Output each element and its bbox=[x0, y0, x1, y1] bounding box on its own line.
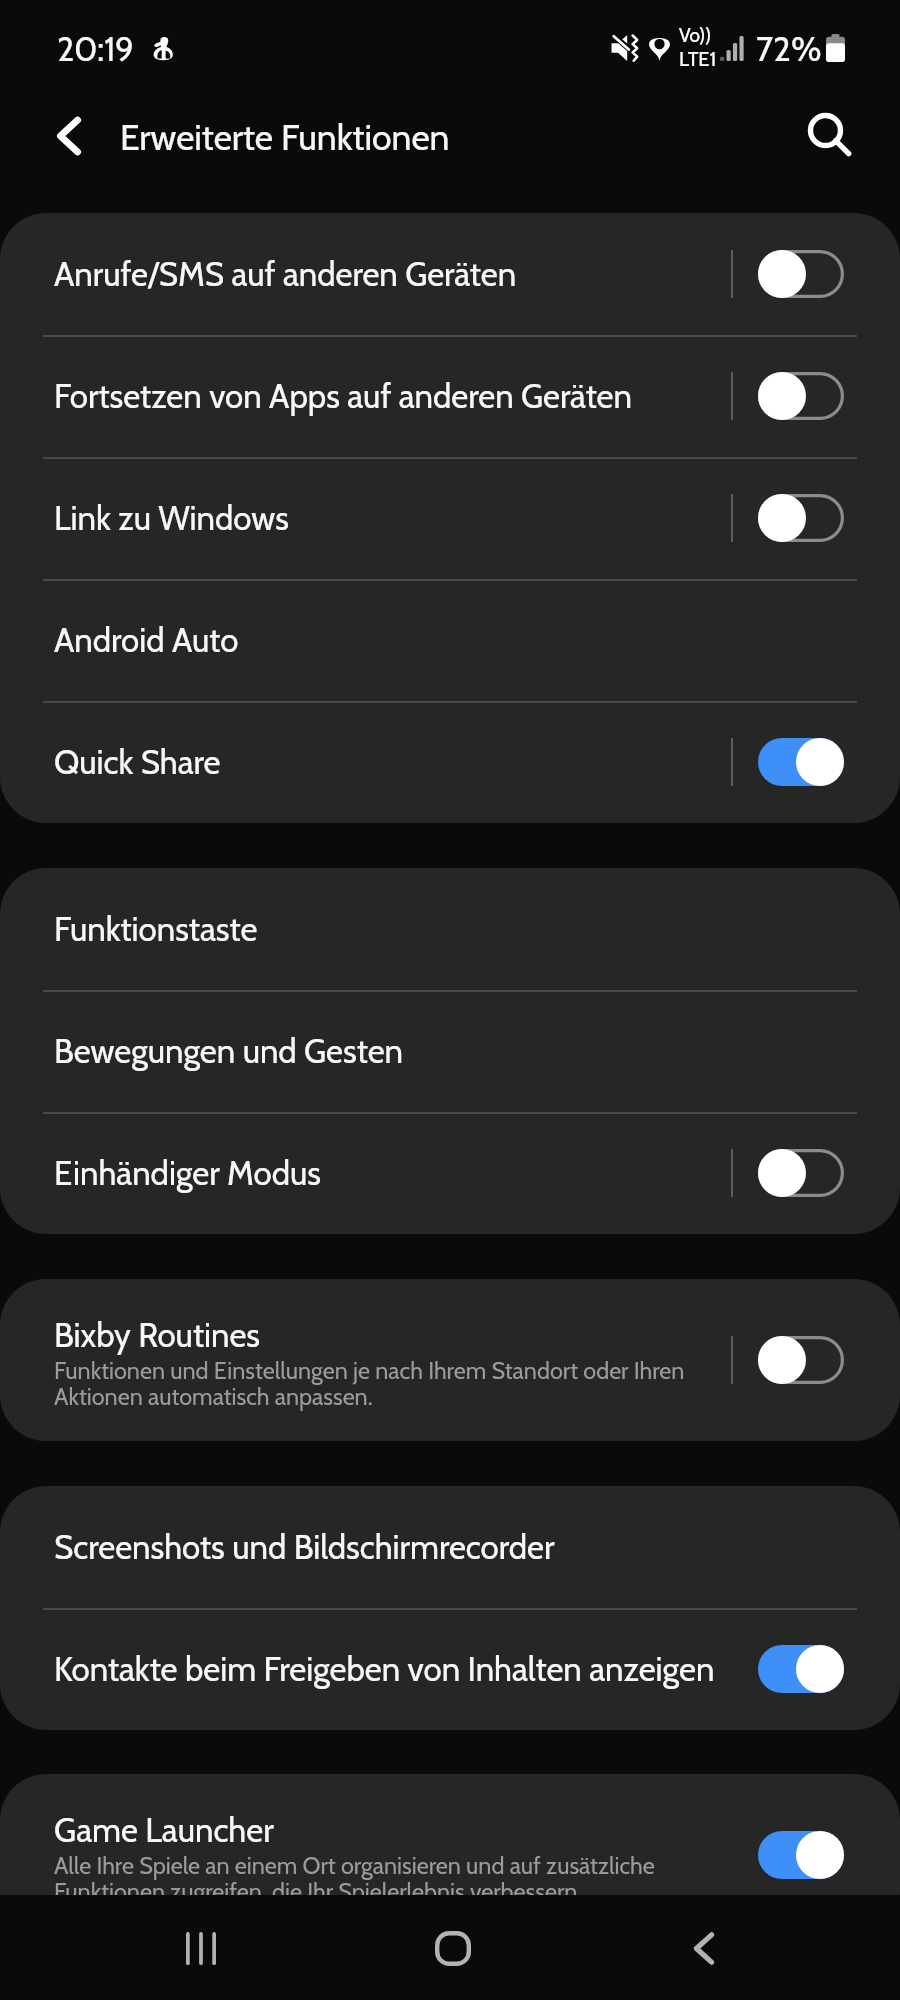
button[interactable]: Kontakte beim Freigeben von Inhalten anz… bbox=[0, 1608, 900, 1730]
staticText: Alle Ihre Spiele an einem Ort organisier… bbox=[54, 1851, 655, 1895]
button[interactable]: Game Launcher bbox=[0, 1774, 900, 1895]
staticText: Android Auto bbox=[54, 620, 239, 660]
staticText: 72% bbox=[756, 28, 822, 69]
button[interactable]: Quick Share bbox=[0, 701, 900, 823]
staticText: Einhändiger Modus bbox=[54, 1153, 321, 1193]
staticText: Bewegungen und Gesten bbox=[54, 1031, 404, 1071]
button[interactable]: Bixby Routines bbox=[0, 1279, 900, 1441]
staticText: Erweiterte Funktionen bbox=[120, 116, 450, 159]
button[interactable]: Fortsetzen von Apps auf anderen Geräten bbox=[0, 335, 900, 457]
button[interactable]: Switch off bbox=[758, 1336, 844, 1384]
button[interactable]: Link zu Windows bbox=[0, 457, 900, 579]
button[interactable]: Back bbox=[35, 116, 103, 184]
staticText: Funktionstaste bbox=[54, 909, 258, 949]
staticText: 20:19 bbox=[57, 29, 134, 69]
staticText: LTE1 bbox=[679, 47, 716, 71]
button[interactable]: Anrufe/SMS auf anderen Geräten bbox=[0, 213, 900, 335]
button[interactable]: Search bbox=[800, 116, 868, 184]
staticText: Vo)) bbox=[679, 24, 712, 47]
staticText: Quick Share bbox=[54, 742, 221, 782]
staticText: Screenshots und Bildschirmrecorder bbox=[54, 1527, 555, 1567]
button[interactable]: Switch on bbox=[758, 1831, 844, 1879]
staticText: Game Launcher bbox=[54, 1810, 274, 1850]
button[interactable]: Switch on bbox=[758, 738, 844, 786]
button[interactable]: Switch off bbox=[758, 372, 844, 420]
button[interactable]: Android Auto bbox=[0, 579, 900, 701]
button[interactable]: Home bbox=[405, 1900, 501, 1996]
staticText: Funktionen und Einstellungen je nach Ihr… bbox=[54, 1356, 685, 1411]
button[interactable]: Switch on bbox=[758, 1645, 844, 1693]
staticText: Fortsetzen von Apps auf anderen Geräten bbox=[54, 376, 632, 416]
staticText: Bixby Routines bbox=[54, 1315, 261, 1355]
button[interactable]: Switch off bbox=[758, 1149, 844, 1197]
button[interactable]: Bewegungen und Gesten bbox=[0, 990, 900, 1112]
button[interactable]: Switch off bbox=[758, 494, 844, 542]
button[interactable]: Recent apps bbox=[153, 1900, 249, 1996]
button[interactable]: Einhändiger Modus bbox=[0, 1112, 900, 1234]
staticText: Kontakte beim Freigeben von Inhalten anz… bbox=[54, 1649, 715, 1689]
button[interactable]: Screenshots und Bildschirmrecorder bbox=[0, 1486, 900, 1608]
button[interactable]: Funktionstaste bbox=[0, 868, 900, 990]
button[interactable]: Back bbox=[657, 1900, 753, 1996]
staticText: Anrufe/SMS auf anderen Geräten bbox=[54, 254, 517, 294]
button[interactable]: Switch off bbox=[758, 250, 844, 298]
staticText: Link zu Windows bbox=[54, 498, 289, 538]
